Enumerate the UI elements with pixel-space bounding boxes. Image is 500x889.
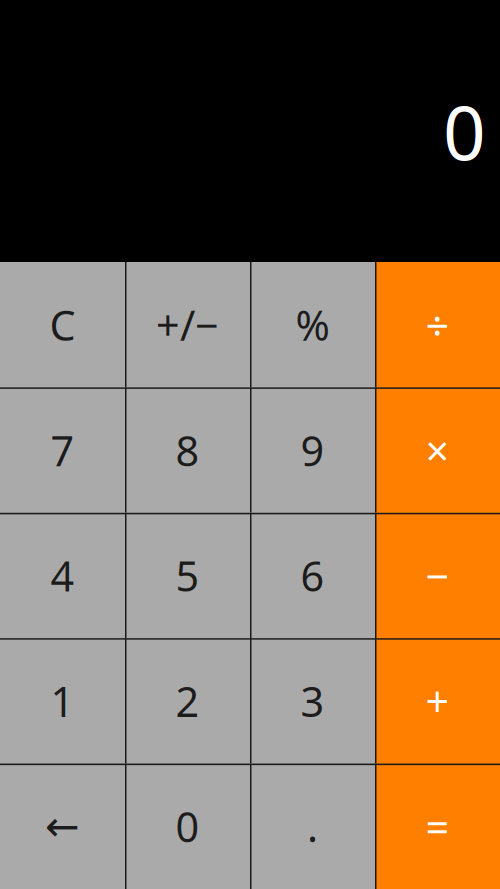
staticText: . <box>307 799 318 854</box>
button[interactable]: 6 <box>250 513 375 638</box>
staticText: 2 <box>175 673 199 728</box>
staticText: C <box>49 297 75 352</box>
staticText: 9 <box>300 423 324 478</box>
staticText: 7 <box>50 423 74 478</box>
button[interactable]: 1 <box>0 638 125 764</box>
button[interactable]: Minus <box>375 513 500 638</box>
button[interactable]: 3 <box>250 638 375 764</box>
button[interactable]: Multiply <box>375 387 500 513</box>
staticText: 1 <box>50 673 74 728</box>
staticText: = <box>425 799 449 854</box>
staticText: × <box>425 423 449 478</box>
staticText: 0 <box>443 81 486 181</box>
staticText: 8 <box>175 423 199 478</box>
staticText: +/− <box>156 297 219 352</box>
button[interactable]: 5 <box>125 513 250 638</box>
button[interactable]: Equals <box>375 764 500 889</box>
staticText: 4 <box>50 548 74 603</box>
button[interactable]: Percent <box>250 262 375 387</box>
button[interactable]: Clear <box>0 262 125 387</box>
button[interactable]: 2 <box>125 638 250 764</box>
staticText: 6 <box>300 548 324 603</box>
button[interactable]: Plus minus, toggle sign <box>125 262 250 387</box>
staticText: 5 <box>175 548 199 603</box>
staticText: 0 <box>175 799 199 854</box>
button[interactable]: Divide <box>375 262 500 387</box>
button[interactable]: 9 <box>250 387 375 513</box>
staticText: ← <box>45 803 80 850</box>
staticText: + <box>425 673 449 728</box>
button[interactable]: Decimal point <box>250 764 375 889</box>
button[interactable]: 8 <box>125 387 250 513</box>
button[interactable]: Backspace <box>0 764 125 889</box>
staticText: − <box>425 548 449 603</box>
staticText: 3 <box>300 673 324 728</box>
button[interactable]: 7 <box>0 387 125 513</box>
staticText: % <box>295 297 329 352</box>
button[interactable]: 4 <box>0 513 125 638</box>
button[interactable]: Plus <box>375 638 500 764</box>
staticText: ÷ <box>425 297 449 352</box>
button[interactable]: 0 <box>125 764 250 889</box>
